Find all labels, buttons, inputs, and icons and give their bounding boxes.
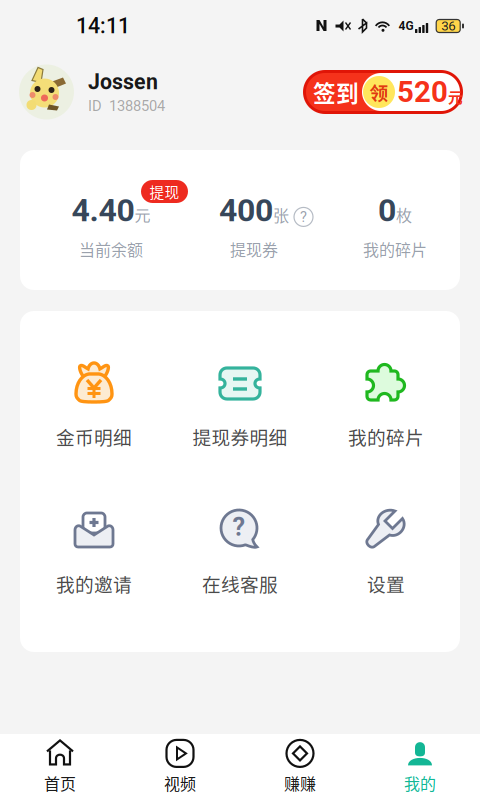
button[interactable]: 400 xyxy=(194,182,314,272)
staticText: 400 xyxy=(219,192,273,229)
staticText: 张 xyxy=(273,203,289,226)
staticText: ? xyxy=(300,208,307,225)
staticText: 金币明细 xyxy=(56,423,132,450)
staticText: 0 xyxy=(378,192,396,229)
staticText: 520 xyxy=(397,75,448,109)
button[interactable]: ? xyxy=(167,511,313,593)
staticText: 设置 xyxy=(367,570,405,597)
staticText: 当前余额 xyxy=(79,237,143,261)
button[interactable]: 提现券明细 xyxy=(167,364,313,446)
staticText: ID xyxy=(88,97,102,115)
staticText: 4G xyxy=(398,19,413,33)
staticText: 视频 xyxy=(164,771,196,795)
staticText: 我的碎片 xyxy=(363,237,427,261)
staticText: 领 xyxy=(369,78,388,105)
staticText: 签到 xyxy=(313,76,359,108)
staticText: ? xyxy=(232,512,245,542)
staticText: 我的 xyxy=(404,771,436,795)
staticText: 提现券明细 xyxy=(192,423,287,450)
staticText: 元 xyxy=(134,203,150,226)
button[interactable]: 签到 xyxy=(304,70,462,114)
button[interactable]: 设置 xyxy=(313,511,459,593)
staticText: 14:11 xyxy=(76,13,130,38)
button[interactable]: 我的 xyxy=(360,734,480,800)
staticText: 4.40 xyxy=(71,192,134,229)
staticText: 提现 xyxy=(149,181,179,202)
staticText: 我的邀请 xyxy=(56,570,132,597)
staticText: Jossen xyxy=(88,69,158,94)
button[interactable]: 金币明细 xyxy=(21,364,167,446)
button[interactable]: Jossen xyxy=(0,64,165,119)
button[interactable]: 4.40 xyxy=(46,182,176,272)
button[interactable]: 我的碎片 xyxy=(313,364,459,446)
staticText: 我的碎片 xyxy=(348,423,424,450)
staticText: 首页 xyxy=(44,771,76,795)
button[interactable]: 赚赚 xyxy=(240,734,360,800)
button[interactable]: 视频 xyxy=(120,734,240,800)
staticText: 元 xyxy=(448,86,463,107)
staticText: 在线客服 xyxy=(202,570,278,597)
staticText: 36 xyxy=(441,18,455,34)
button[interactable]: 0 xyxy=(340,182,450,272)
staticText: 提现券 xyxy=(230,237,278,261)
staticText: 1388504 xyxy=(109,97,165,115)
button[interactable]: 首页 xyxy=(0,734,120,800)
button[interactable]: 我的邀请 xyxy=(21,511,167,593)
staticText: 赚赚 xyxy=(284,771,316,795)
staticText: 枚 xyxy=(396,203,412,226)
